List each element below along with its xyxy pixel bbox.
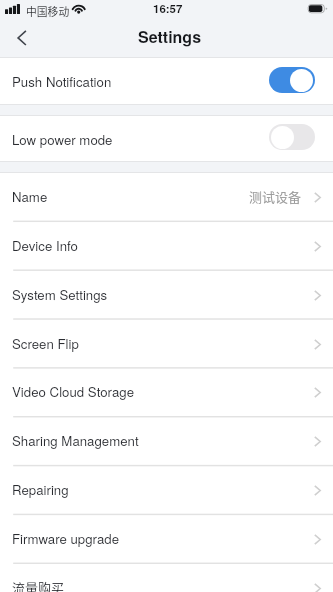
button[interactable]: Name [0,172,333,221]
staticText: Device Info [12,236,78,255]
staticText: Video Cloud Storage [12,382,134,401]
staticText: 16:57 [153,0,183,16]
button[interactable]: System Settings [0,270,333,319]
button[interactable]: Screen Flip [0,319,333,368]
staticText: Name [12,187,48,206]
button[interactable]: Video Cloud Storage [0,367,333,416]
staticText: Push Notification [12,72,112,91]
staticText: System Settings [12,285,108,304]
staticText: 流量购买 [12,578,65,592]
button[interactable]: Firmware upgrade [0,514,333,563]
staticText: Low power mode [12,130,113,149]
staticText: Repairing [12,480,69,499]
button[interactable]: Device Info [0,221,333,270]
button[interactable]: Sharing Management [0,416,333,465]
button[interactable]: Push Notification [0,58,333,105]
staticText: 中国移动 [26,3,70,19]
staticText: Sharing Management [12,431,139,450]
button[interactable]: Low power mode [0,116,333,162]
staticText: Settings [138,25,202,48]
staticText: Firmware upgrade [12,529,120,548]
button[interactable]: 流量购买 [0,563,333,592]
staticText: 测试设备 [249,187,302,206]
button[interactable]: Back [0,16,44,60]
button[interactable]: Repairing [0,465,333,514]
staticText: Screen Flip [12,334,79,353]
